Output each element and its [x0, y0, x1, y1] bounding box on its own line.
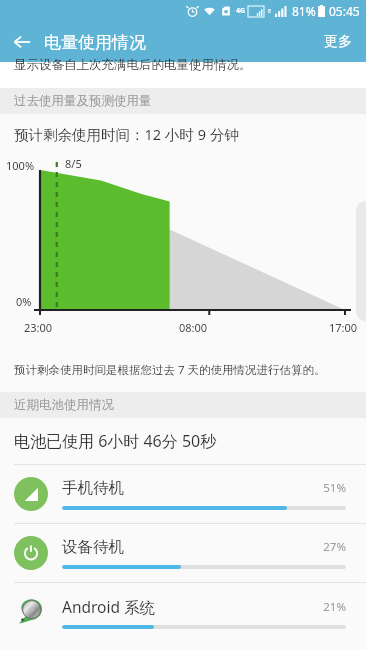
staticText: 预计剩余使用时间是根据您过去 7 天的使用情况进行估算的。: [14, 362, 326, 378]
staticText: Android 系统: [62, 596, 323, 617]
staticText: 27%: [323, 539, 346, 555]
staticText: 51%: [323, 480, 346, 496]
staticText: 电量使用情况: [44, 32, 146, 53]
button[interactable]: 设备待机: [0, 524, 366, 582]
staticText: 显示设备自上次充满电后的电量使用情况。: [14, 57, 252, 73]
staticText: 预计剩余使用时间：12 小时 9 分钟: [14, 124, 239, 144]
staticText: 设备待机: [62, 537, 323, 557]
staticText: 23:00: [24, 320, 53, 335]
button[interactable]: 更多: [310, 23, 366, 61]
staticText: 08:00: [179, 320, 208, 335]
staticText: 17:00: [329, 320, 358, 335]
staticText: 手机待机: [62, 478, 323, 498]
staticText: 81%: [292, 3, 316, 19]
staticText: 100%: [6, 158, 35, 173]
button[interactable]: Back: [0, 22, 44, 62]
staticText: 更多: [324, 33, 352, 51]
staticText: 电池已使用 6小时 46分 50秒: [14, 430, 217, 452]
staticText: 21%: [323, 599, 346, 615]
staticText: 05:45: [329, 3, 360, 19]
staticText: 4G: [236, 6, 246, 16]
button[interactable]: 手机待机: [0, 465, 366, 523]
staticText: 近期电池使用情况: [14, 397, 114, 413]
staticText: E: [268, 7, 272, 15]
button[interactable]: Android 系统: [0, 583, 366, 641]
staticText: 0%: [16, 294, 32, 309]
staticText: 8/5: [65, 156, 82, 171]
staticText: 过去使用量及预测使用量: [14, 93, 152, 109]
